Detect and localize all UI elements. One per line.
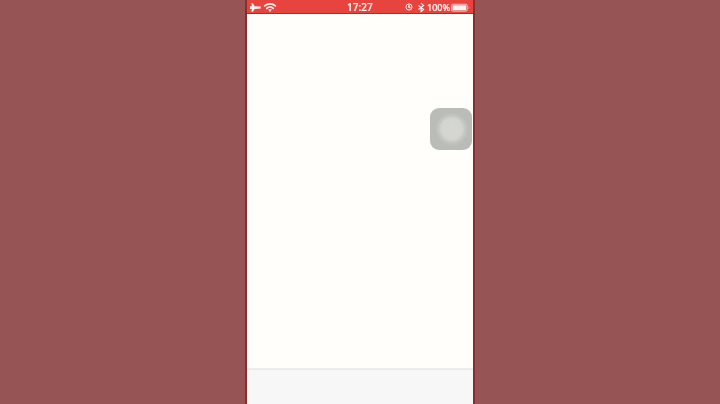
- button[interactable]: Button: [430, 108, 472, 150]
- other: Alarm: [405, 3, 413, 11]
- other: Airplane mode: [250, 3, 261, 12]
- other: Battery full: [451, 3, 470, 12]
- staticText: 100%: [427, 1, 451, 13]
- other: Bluetooth: [418, 3, 424, 12]
- other: Wi-Fi: [265, 3, 275, 12]
- staticText: 17:27: [347, 0, 373, 14]
